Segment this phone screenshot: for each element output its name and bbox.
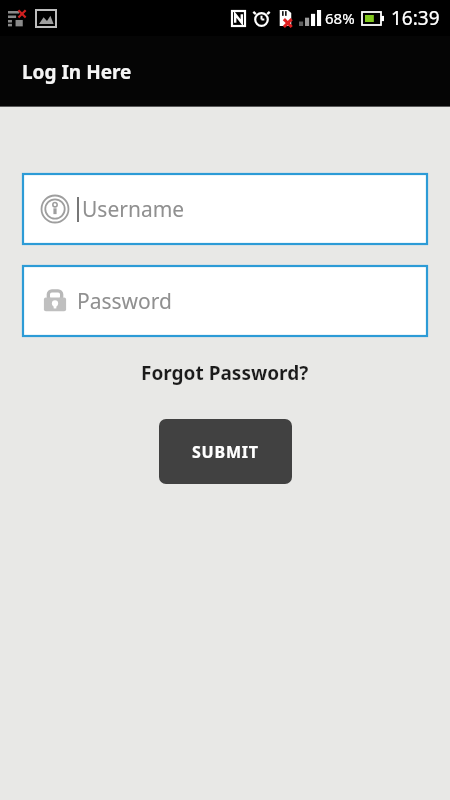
- button[interactable]: SUBMIT: [159, 419, 292, 484]
- staticText: SUBMIT: [192, 441, 259, 463]
- staticText: 16:39: [391, 5, 440, 31]
- staticText: Log In Here: [22, 59, 132, 85]
- button[interactable]: Password: [23, 266, 427, 336]
- staticText: 68%: [325, 8, 355, 28]
- button[interactable]: Forgot Password?: [0, 360, 450, 386]
- other: Password: [40, 286, 70, 316]
- staticText: Username: [82, 195, 185, 224]
- staticText: Forgot Password?: [141, 360, 309, 386]
- staticText: Password: [77, 287, 172, 316]
- button[interactable]: Username: [23, 174, 427, 244]
- other: Username: [40, 194, 70, 224]
